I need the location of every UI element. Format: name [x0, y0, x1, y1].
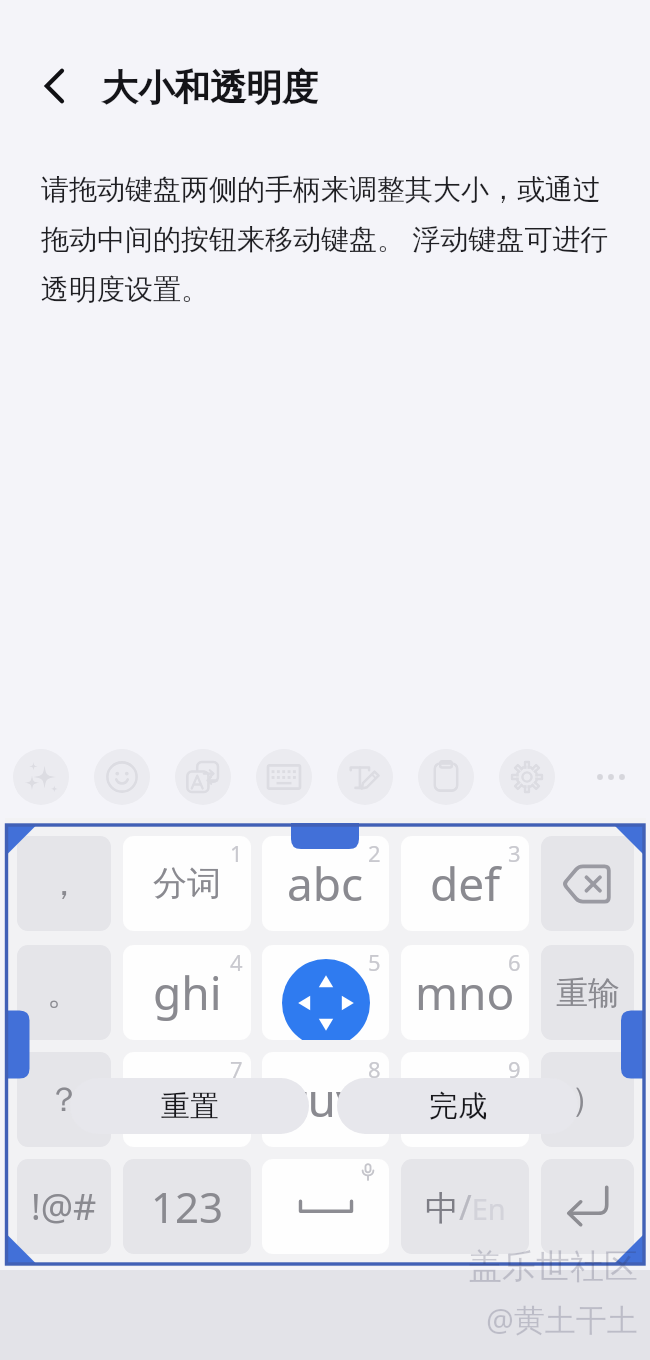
button[interactable]: abc — [262, 836, 389, 931]
button[interactable]: 123 — [123, 1159, 251, 1254]
button[interactable]: wxyz — [401, 1052, 529, 1147]
staticText: !@# — [31, 1182, 97, 1231]
staticText: 4 — [230, 947, 243, 977]
staticText: ） — [571, 1078, 605, 1121]
button[interactable]: More — [588, 754, 634, 800]
button[interactable]: Back — [30, 62, 78, 110]
button[interactable]: 中/En — [401, 1159, 529, 1254]
button[interactable]: mno — [401, 945, 529, 1040]
button[interactable]: !@# — [17, 1159, 111, 1254]
staticText: 1 — [230, 838, 243, 868]
staticText: ， — [47, 862, 81, 905]
button[interactable]: ghi — [123, 945, 251, 1040]
button[interactable] — [541, 836, 634, 931]
staticText: tuv — [291, 1068, 360, 1131]
button[interactable]: pqrs — [123, 1052, 251, 1147]
staticText: abc — [287, 852, 364, 915]
staticText: 6 — [508, 947, 521, 977]
button[interactable]: ， — [17, 836, 111, 931]
button[interactable]: Emoji — [94, 749, 150, 805]
staticText: 中/En — [425, 1184, 506, 1230]
staticText: ？ — [47, 1078, 81, 1121]
button[interactable]: 5 — [262, 945, 389, 1040]
staticText: 2 — [368, 838, 381, 868]
staticText: 重输 — [556, 973, 620, 1013]
button[interactable]: 重置 — [70, 1078, 309, 1134]
button[interactable]: def — [401, 836, 529, 931]
staticText: 大小和透明度 — [102, 65, 318, 110]
staticText: wxyz — [412, 1068, 518, 1131]
button[interactable] — [541, 1159, 634, 1254]
button[interactable]: Translate — [175, 749, 231, 805]
staticText: pqrs — [138, 1068, 236, 1131]
staticText: @黄土干土 — [486, 1298, 638, 1340]
button[interactable]: 完成 — [337, 1078, 578, 1134]
button[interactable]: tuv — [262, 1052, 389, 1147]
button[interactable]: Settings — [499, 749, 555, 805]
button[interactable]: 重输 — [541, 945, 634, 1040]
staticText: def — [430, 852, 501, 915]
button[interactable]: Sparkle — [13, 749, 69, 805]
staticText: 请拖动键盘两侧的手柄来调整其大小，或通过 拖动中间的按钮来移动键盘。 浮动键盘可… — [41, 172, 609, 307]
staticText: 123 — [151, 1178, 224, 1235]
button[interactable]: Handwriting — [337, 749, 393, 805]
staticText: 盖乐世社区 — [468, 1245, 638, 1288]
staticText: 重置 — [161, 1088, 219, 1125]
staticText: 。 — [47, 971, 81, 1014]
button[interactable]: 。 — [17, 945, 111, 1040]
staticText: 9 — [508, 1054, 521, 1084]
button[interactable]: ？ — [17, 1052, 111, 1147]
button[interactable]: 分词 — [123, 836, 251, 931]
staticText: 完成 — [429, 1088, 487, 1125]
button[interactable] — [262, 1159, 389, 1254]
staticText: mno — [415, 961, 515, 1024]
button[interactable]: ） — [541, 1052, 634, 1147]
button[interactable]: Clipboard — [418, 749, 474, 805]
staticText: 5 — [368, 947, 381, 977]
staticText: 3 — [508, 838, 521, 868]
staticText: 分词 — [153, 862, 221, 905]
staticText: 8 — [368, 1054, 381, 1084]
staticText: ghi — [153, 961, 222, 1024]
button[interactable]: Keyboard — [256, 749, 312, 805]
staticText: 7 — [230, 1054, 243, 1084]
